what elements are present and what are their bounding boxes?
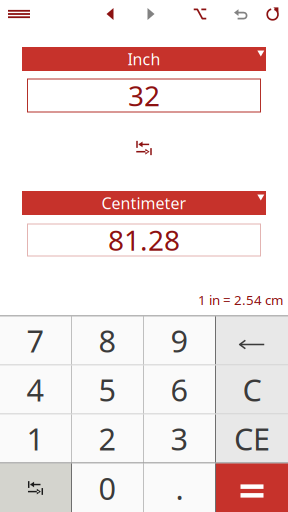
staticText: 81.28 (108, 221, 180, 259)
staticText: Centimeter (101, 192, 186, 214)
staticText: 7 (26, 320, 44, 361)
button[interactable]: 32 (27, 79, 260, 112)
button[interactable]: Options (183, 1, 217, 27)
button[interactable]: 0 (72, 463, 143, 512)
staticText: 4 (26, 369, 44, 410)
button[interactable]: 2 (72, 414, 143, 462)
staticText: 6 (170, 369, 188, 410)
staticText: 3 (170, 418, 188, 459)
staticText: 32 (128, 77, 160, 114)
staticText: 1 in = 2.54 cm (198, 291, 283, 309)
staticText: 8 (98, 320, 116, 361)
button[interactable]: Previous (93, 1, 127, 27)
button[interactable]: 6 (144, 365, 215, 413)
button[interactable]: Menu (2, 1, 36, 27)
button[interactable]: Next (134, 1, 168, 27)
button[interactable]: 81.28 (27, 224, 260, 256)
button[interactable]: 8 (72, 316, 143, 364)
staticText: 5 (98, 369, 116, 410)
button[interactable]: Inch (22, 47, 266, 71)
button[interactable]: Swap units (130, 137, 158, 159)
button[interactable]: 5 (72, 365, 143, 413)
staticText: . (175, 468, 183, 508)
button[interactable]: C (216, 365, 288, 413)
staticText: 1 (26, 418, 44, 459)
button[interactable]: CE (216, 414, 288, 462)
button[interactable]: Backspace (216, 316, 288, 364)
staticText: 2 (98, 418, 116, 459)
staticText: CE (234, 418, 270, 459)
button[interactable]: 7 (0, 316, 71, 364)
button[interactable]: . (144, 463, 215, 512)
staticText: Inch (127, 48, 160, 70)
button[interactable]: Centimeter (22, 191, 266, 215)
button[interactable]: 1 (0, 414, 71, 462)
staticText: 0 (98, 468, 116, 508)
button[interactable]: 9 (144, 316, 215, 364)
button[interactable]: 3 (144, 414, 215, 462)
staticText: 9 (170, 320, 188, 361)
button[interactable]: Undo (225, 1, 259, 27)
button[interactable]: Equals (216, 463, 288, 512)
button[interactable]: Swap (0, 463, 71, 512)
staticText: C (242, 369, 261, 410)
button[interactable]: Reset (259, 1, 287, 27)
button[interactable]: 4 (0, 365, 71, 413)
